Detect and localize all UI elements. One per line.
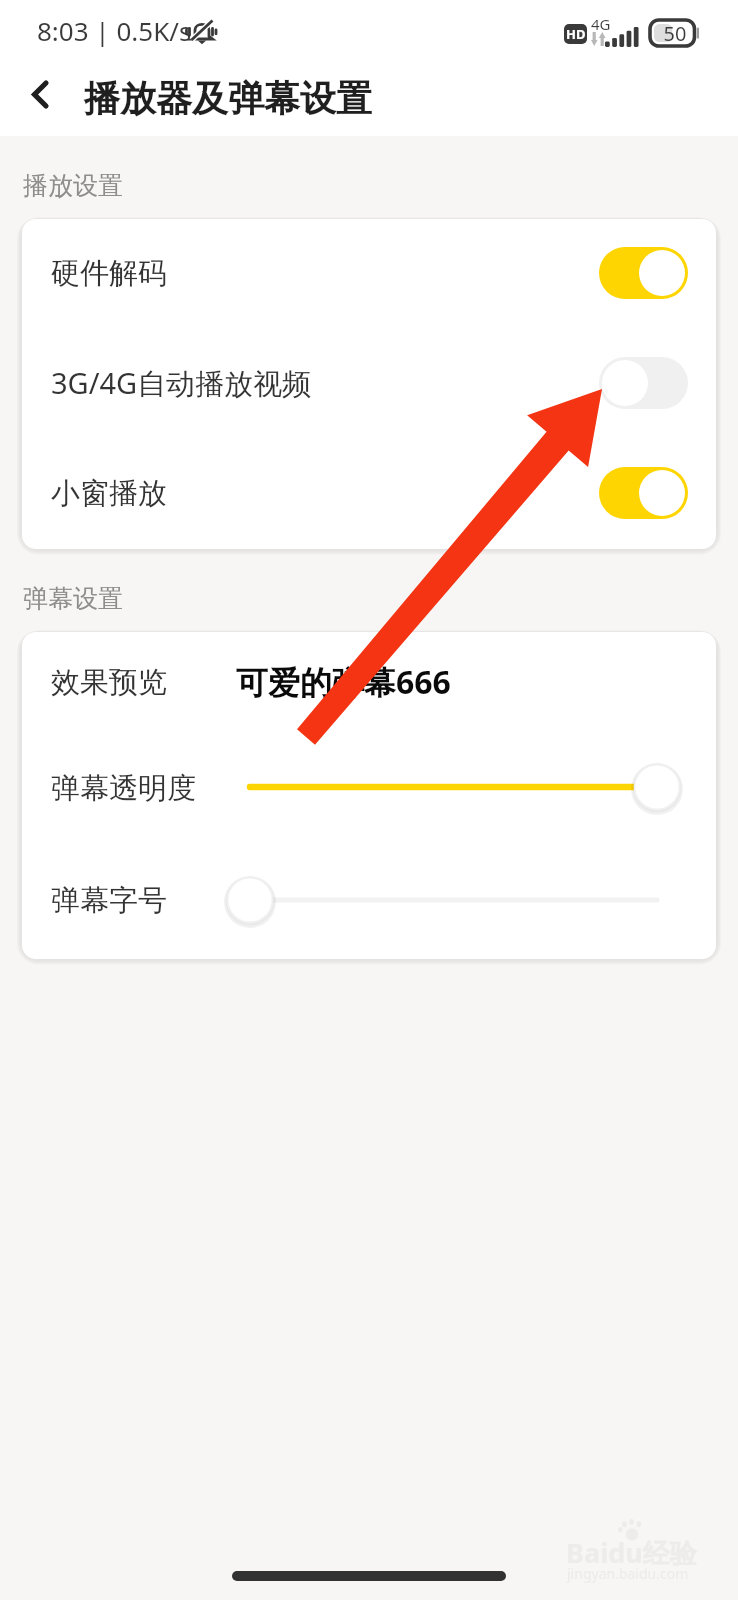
button[interactable]: 小窗播放 xyxy=(22,439,716,549)
button[interactable]: 硬件解码 xyxy=(22,219,716,329)
staticText: 播放设置 xyxy=(23,170,123,201)
staticText: 3G/4G自动播放视频 xyxy=(51,363,312,403)
button[interactable]: Back xyxy=(8,69,74,135)
staticText: 播放器及弹幕设置 xyxy=(84,76,372,121)
staticText: 50 xyxy=(655,20,695,47)
button[interactable]: 效果预览 xyxy=(22,632,716,734)
staticText: jingyan.baidu.com xyxy=(567,1564,689,1583)
button[interactable]: 弹幕透明度 xyxy=(22,734,716,844)
staticText: 8:03 | 0.5K/s xyxy=(37,13,192,48)
staticText: 效果预览 xyxy=(51,664,167,701)
staticText: 弹幕字号 xyxy=(51,882,167,919)
staticText: 4G xyxy=(591,14,611,34)
staticText: HD xyxy=(566,25,586,43)
button[interactable]: 弹幕字号 xyxy=(22,844,716,959)
staticText: 硬件解码 xyxy=(51,255,167,292)
staticText: Baidu经验 xyxy=(566,1534,697,1571)
button[interactable]: 3G/4G自动播放视频 xyxy=(22,329,716,439)
staticText: 小窗播放 xyxy=(51,475,167,512)
staticText: 弹幕透明度 xyxy=(51,770,196,807)
staticText: 弹幕设置 xyxy=(23,583,123,614)
staticText: 可爱的弹幕666 xyxy=(236,660,451,704)
